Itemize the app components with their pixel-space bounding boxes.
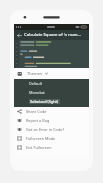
staticText: 4 bbox=[16, 53, 18, 56]
staticText: 5 bbox=[16, 57, 18, 60]
button[interactable]: Themes bbox=[14, 68, 89, 79]
staticText: 2 bbox=[16, 45, 18, 48]
button[interactable]: Monokai bbox=[14, 88, 89, 97]
staticText: Monokai bbox=[29, 90, 45, 95]
staticText: Themes bbox=[27, 71, 42, 76]
button[interactable]: Share Code bbox=[14, 107, 89, 116]
button[interactable]: Got an Error in Code? bbox=[14, 125, 89, 134]
button[interactable]: Back bbox=[14, 30, 24, 40]
button[interactable]: Default bbox=[14, 79, 89, 88]
staticText: Default bbox=[29, 81, 43, 86]
staticText: Report a Bug bbox=[26, 118, 50, 123]
staticText: 1 bbox=[16, 41, 18, 44]
button[interactable]: Exit Fullscreen bbox=[14, 143, 89, 152]
staticText: Share Code bbox=[26, 109, 47, 114]
button[interactable]: Report a Bug bbox=[14, 116, 89, 125]
staticText: 6 bbox=[16, 61, 18, 64]
staticText: Solarized (light) bbox=[30, 99, 59, 104]
staticText: Exit Fullscreen bbox=[26, 145, 52, 150]
staticText: Fullscreen Mode bbox=[26, 136, 56, 141]
button[interactable]: Solarized (light) bbox=[14, 97, 89, 106]
staticText: Calculate Square of 'n num… bbox=[24, 32, 86, 38]
button[interactable]: Fullscreen Mode bbox=[14, 134, 89, 143]
staticText: 3 bbox=[16, 49, 18, 52]
staticText: Got an Error in Code? bbox=[26, 127, 65, 132]
staticText: 7 bbox=[16, 65, 18, 68]
